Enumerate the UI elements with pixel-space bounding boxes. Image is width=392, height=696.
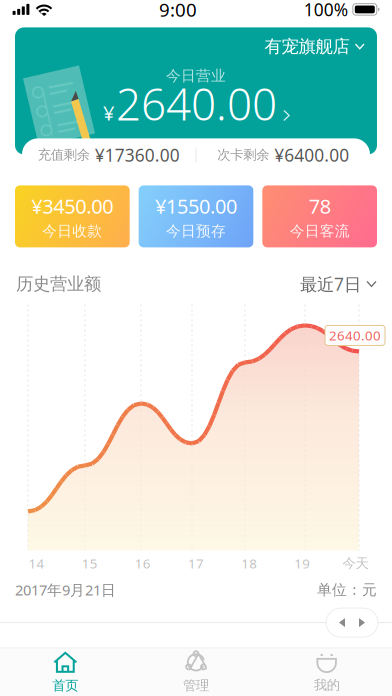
staticText: 今日营业	[166, 67, 226, 85]
button[interactable]: 有宠旗舰店	[264, 35, 364, 57]
staticText: 单位：元	[317, 581, 377, 599]
staticText: ¥6400.00	[274, 143, 349, 166]
button[interactable]: 次卡剩余	[196, 138, 370, 171]
staticText: 充值剩余	[38, 147, 90, 163]
staticText: 有宠旗舰店	[264, 36, 349, 57]
staticText: ¥17360.00	[95, 143, 180, 166]
staticText: ¥1550.00	[155, 193, 237, 219]
staticText: 9:00	[159, 0, 197, 22]
button[interactable]: 最近7日	[300, 267, 376, 300]
staticText: 首页	[52, 677, 78, 694]
button[interactable]: Previous and next page	[326, 608, 378, 637]
staticText: 2017年9月21日	[15, 580, 116, 600]
button[interactable]: 首页	[0, 648, 131, 696]
staticText: 15	[82, 554, 98, 572]
staticText: 2640.00	[329, 327, 381, 344]
button[interactable]: ¥3450.00	[15, 185, 130, 247]
button[interactable]: ¥1550.00	[139, 185, 253, 247]
staticText: 2640.00	[116, 74, 277, 133]
staticText: 100%	[304, 0, 348, 21]
staticText: 今日收款	[42, 222, 102, 240]
button[interactable]: 充值剩余	[22, 138, 195, 171]
button[interactable]: 管理	[131, 648, 261, 696]
staticText: 今日预存	[166, 222, 226, 240]
staticText: ¥3450.00	[31, 193, 113, 219]
button[interactable]: ¥	[103, 84, 289, 122]
staticText: 次卡剩余	[217, 147, 269, 163]
staticText: 今日客流	[290, 222, 350, 240]
staticText: 今天	[342, 555, 368, 571]
staticText: 历史营业额	[16, 273, 101, 295]
staticText: 78	[309, 193, 331, 219]
button[interactable]: 78	[262, 185, 377, 247]
staticText: ¥	[103, 99, 114, 126]
staticText: 管理	[183, 677, 209, 694]
staticText: 17	[188, 554, 204, 572]
staticText: 最近7日	[300, 272, 361, 295]
staticText: 14	[29, 554, 45, 572]
button[interactable]: 我的	[261, 648, 392, 696]
staticText: 我的	[314, 677, 340, 693]
staticText: 18	[241, 554, 257, 572]
staticText: 19	[294, 554, 310, 572]
staticText: 16	[135, 554, 151, 572]
